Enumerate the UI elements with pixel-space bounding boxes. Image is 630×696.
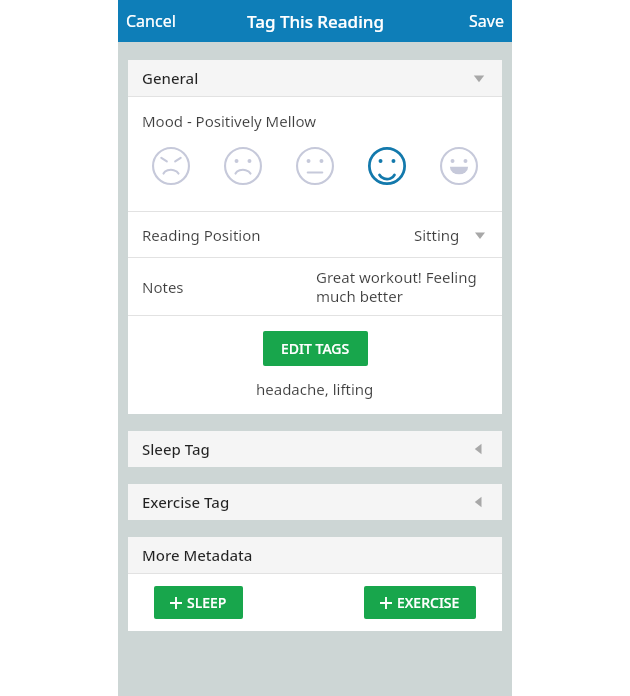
button[interactable]: Angry mood	[148, 143, 194, 189]
staticText: Great workout! Feeling much better	[316, 267, 488, 306]
button[interactable]: Notes	[128, 258, 502, 315]
staticText: EDIT TAGS	[281, 339, 350, 358]
staticText: More Metadata	[142, 545, 253, 565]
button[interactable]: EDIT TAGS	[263, 331, 368, 366]
button[interactable]: Happy mood	[364, 143, 410, 189]
button[interactable]: Cancel	[118, 4, 184, 38]
button[interactable]: Save	[461, 4, 512, 38]
staticText: Reading Position	[142, 225, 261, 245]
staticText: SLEEP	[187, 593, 227, 612]
button[interactable]: Neutral mood	[292, 143, 338, 189]
staticText: Exercise Tag	[142, 492, 230, 512]
button[interactable]: SLEEP	[154, 586, 243, 619]
staticText: EXERCISE	[397, 593, 460, 612]
staticText: Save	[469, 10, 504, 32]
staticText: General	[142, 68, 199, 88]
staticText: Sitting	[414, 225, 460, 245]
button[interactable]: General	[128, 60, 502, 96]
button[interactable]: Very happy mood	[436, 143, 482, 189]
staticText: Sleep Tag	[142, 439, 210, 459]
button[interactable]: Exercise Tag	[128, 484, 502, 520]
staticText: Cancel	[126, 10, 176, 32]
staticText: Mood - Positively Mellow	[142, 111, 316, 131]
button[interactable]: Sleep Tag	[128, 431, 502, 467]
staticText: headache, lifting	[256, 379, 374, 399]
staticText: Notes	[142, 277, 184, 297]
button[interactable]: Sad mood	[220, 143, 266, 189]
staticText: Tag This Reading	[247, 10, 384, 33]
button[interactable]: EXERCISE	[364, 586, 476, 619]
button[interactable]: More Metadata	[128, 537, 502, 573]
button[interactable]: Reading Position	[128, 212, 502, 257]
